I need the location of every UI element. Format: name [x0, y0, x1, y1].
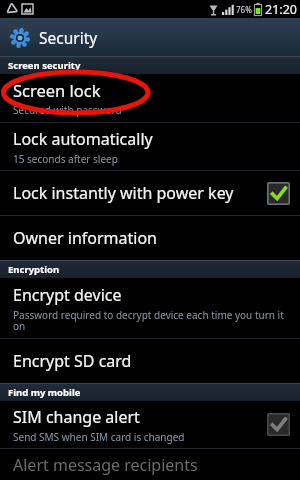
button[interactable]: Encrypt SD card [0, 339, 300, 383]
button[interactable]: Screen lock [0, 74, 300, 122]
staticText: Encrypt device [13, 284, 122, 306]
button[interactable]: Lock instantly with power key [0, 171, 300, 215]
staticText: Send SMS when SIM card is changed [13, 430, 185, 444]
staticText: Lock automatically [13, 128, 153, 150]
staticText: Lock instantly with power key [13, 182, 234, 204]
button[interactable]: SIM change alert [0, 401, 300, 448]
staticText: Alert message recipients [13, 454, 198, 476]
staticText: Secured with password [13, 103, 122, 117]
button[interactable]: Owner information [0, 216, 300, 260]
staticText: 15 seconds after sleep [13, 152, 118, 166]
staticText: Screen lock [13, 79, 101, 101]
staticText: Encrypt SD card [13, 350, 132, 372]
button[interactable]: Checked, disabled [267, 413, 290, 436]
staticText: Owner information [13, 227, 157, 249]
staticText: Security [39, 27, 98, 48]
staticText: Find my mobile [8, 386, 81, 399]
staticText: Password required to decrypt device each… [13, 308, 290, 333]
button[interactable]: Lock automatically [0, 123, 300, 170]
button[interactable]: Checked [267, 182, 290, 205]
staticText: 21:20 [265, 1, 297, 18]
staticText: 76% [236, 4, 252, 15]
button[interactable]: Encrypt device [0, 278, 300, 338]
staticText: SIM change alert [13, 406, 140, 428]
staticText: Screen security [8, 59, 81, 72]
button[interactable]: Alert message recipients [0, 449, 300, 480]
staticText: Encryption [8, 263, 60, 276]
button[interactable]: Security settings [0, 18, 300, 56]
